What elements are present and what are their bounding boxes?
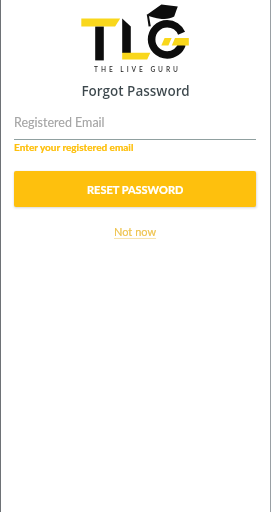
staticText: Enter your registered email	[14, 141, 134, 153]
staticText: RESET PASSWORD	[87, 183, 184, 196]
button[interactable]: Not now	[114, 225, 157, 238]
staticText: THE LIVE GURU	[2, 65, 271, 73]
button[interactable]: RESET PASSWORD	[14, 171, 256, 207]
staticText: Registered Email	[14, 115, 105, 130]
staticText: Forgot Password	[0, 82, 271, 100]
